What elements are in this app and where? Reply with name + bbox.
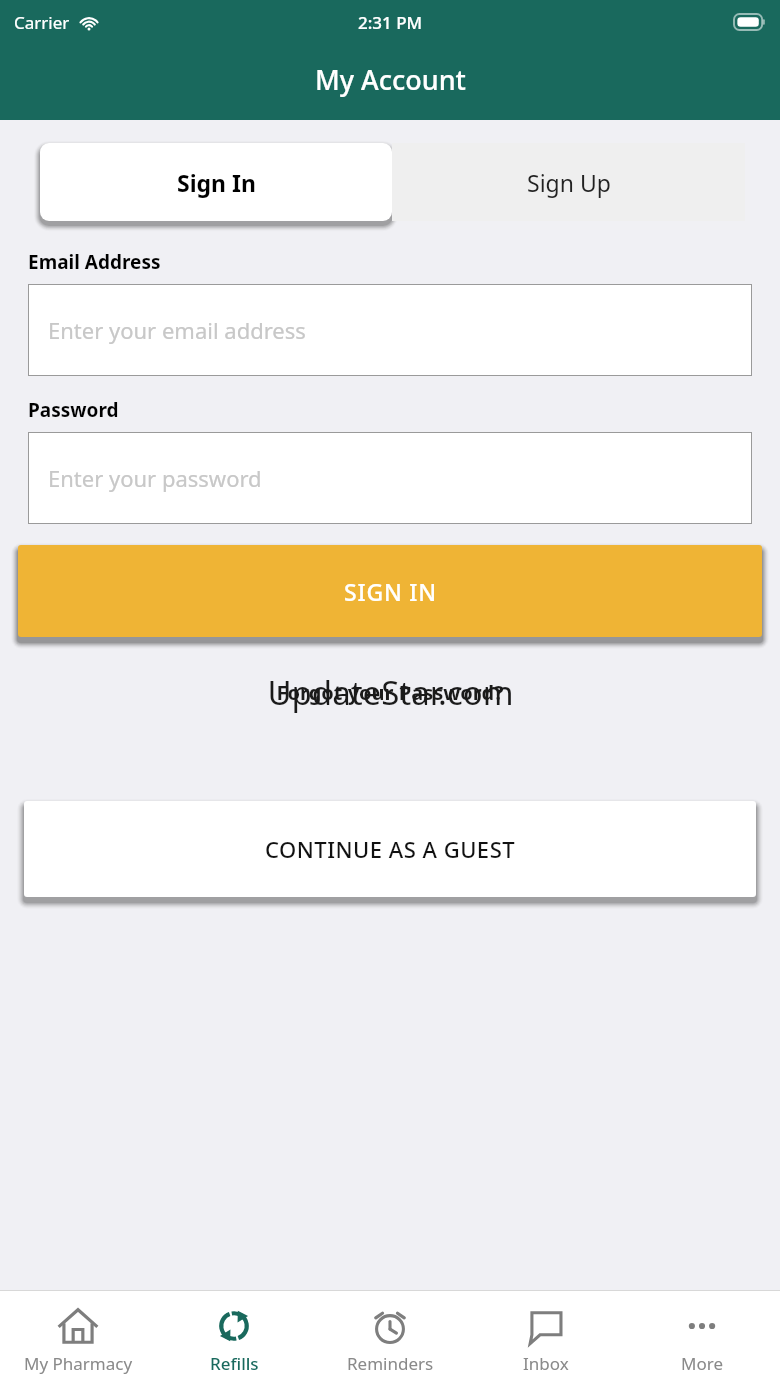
staticText: Enter your email address [48,315,306,345]
staticText: My Account [315,61,466,98]
button[interactable]: More [624,1291,780,1387]
button[interactable]: Reminders [312,1291,468,1387]
staticText: Carrier [14,11,70,34]
button[interactable]: Enter your email address [28,284,752,376]
button[interactable]: Sign In [40,143,392,221]
staticText: Email Address [28,249,161,275]
staticText: Inbox [523,1352,569,1375]
staticText: More [681,1352,723,1375]
button[interactable]: Sign Up [392,143,745,221]
staticText: My Pharmacy [24,1352,133,1375]
button[interactable]: SIGN IN [18,545,762,637]
staticText: 2:31 PM [358,11,423,34]
staticText: Password [28,397,119,423]
staticText: Enter your password [48,463,262,493]
button[interactable]: CONTINUE AS A GUEST [24,801,756,897]
staticText: SIGN IN [344,576,437,607]
button[interactable]: Inbox [468,1291,624,1387]
button[interactable]: Enter your password [28,432,752,524]
staticText: UpdateStar.com [267,670,514,715]
button[interactable]: Refills [156,1291,312,1387]
staticText: Forgot your Password? [276,679,504,706]
staticText: Sign Up [527,167,611,198]
staticText: Sign In [177,167,256,198]
staticText: Reminders [347,1352,434,1375]
staticText: CONTINUE AS A GUEST [265,834,516,864]
staticText: Refills [210,1352,259,1375]
button[interactable]: My Pharmacy [0,1291,156,1387]
